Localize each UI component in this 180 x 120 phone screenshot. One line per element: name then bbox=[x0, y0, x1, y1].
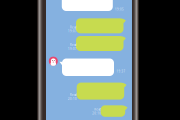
staticText: 19:07 bbox=[68, 29, 77, 33]
staticText: 19:07 bbox=[68, 47, 77, 51]
staticText: Read bbox=[70, 93, 77, 97]
staticText: 19:37 bbox=[116, 70, 125, 73]
staticText: 20:10 bbox=[68, 97, 77, 101]
staticText: 19:05 bbox=[115, 8, 124, 11]
staticText: 20:10 bbox=[92, 112, 101, 115]
staticText: Read bbox=[94, 108, 101, 111]
staticText: Read bbox=[70, 43, 77, 47]
staticText: Read bbox=[70, 26, 77, 29]
